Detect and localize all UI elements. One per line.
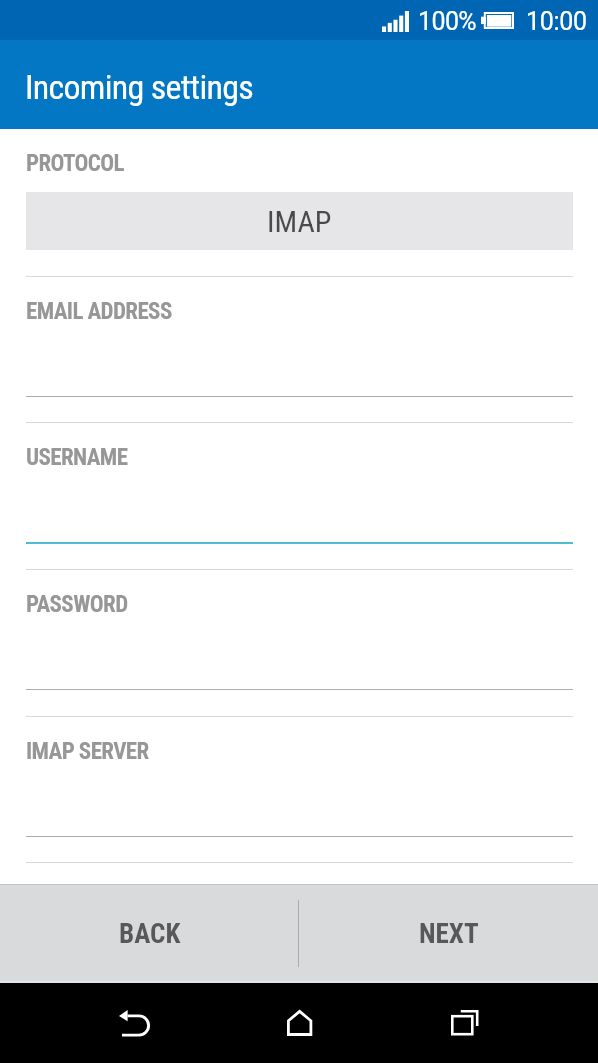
button[interactable]: BACK (0, 884, 299, 983)
button[interactable]: IMAP SERVER (0, 717, 598, 863)
staticText: PROTOCOL (26, 150, 124, 177)
staticText: USERNAME (26, 444, 128, 471)
staticText: IMAP SERVER (26, 738, 149, 765)
staticText: Incoming settings (25, 67, 254, 107)
staticText: IMAP (267, 204, 332, 239)
other: Battery full (481, 12, 514, 29)
button[interactable]: NEXT (299, 884, 598, 983)
button[interactable]: Home (232, 983, 365, 1063)
staticText: NEXT (419, 918, 479, 950)
other: Signal strength (382, 11, 409, 32)
button[interactable]: PROTOCOL (0, 129, 598, 276)
button[interactable]: IMAP (26, 192, 573, 250)
staticText: 100% (418, 7, 477, 36)
button[interactable]: Recent apps (399, 983, 532, 1063)
button[interactable]: USERNAME (0, 423, 598, 569)
button[interactable]: Back (66, 983, 199, 1063)
staticText: BACK (119, 918, 181, 950)
button[interactable]: EMAIL ADDRESS (0, 277, 598, 422)
staticText: PASSWORD (26, 591, 128, 618)
staticText: EMAIL ADDRESS (26, 298, 172, 325)
button[interactable]: PASSWORD (0, 570, 598, 716)
staticText: 10:00 (526, 7, 587, 36)
